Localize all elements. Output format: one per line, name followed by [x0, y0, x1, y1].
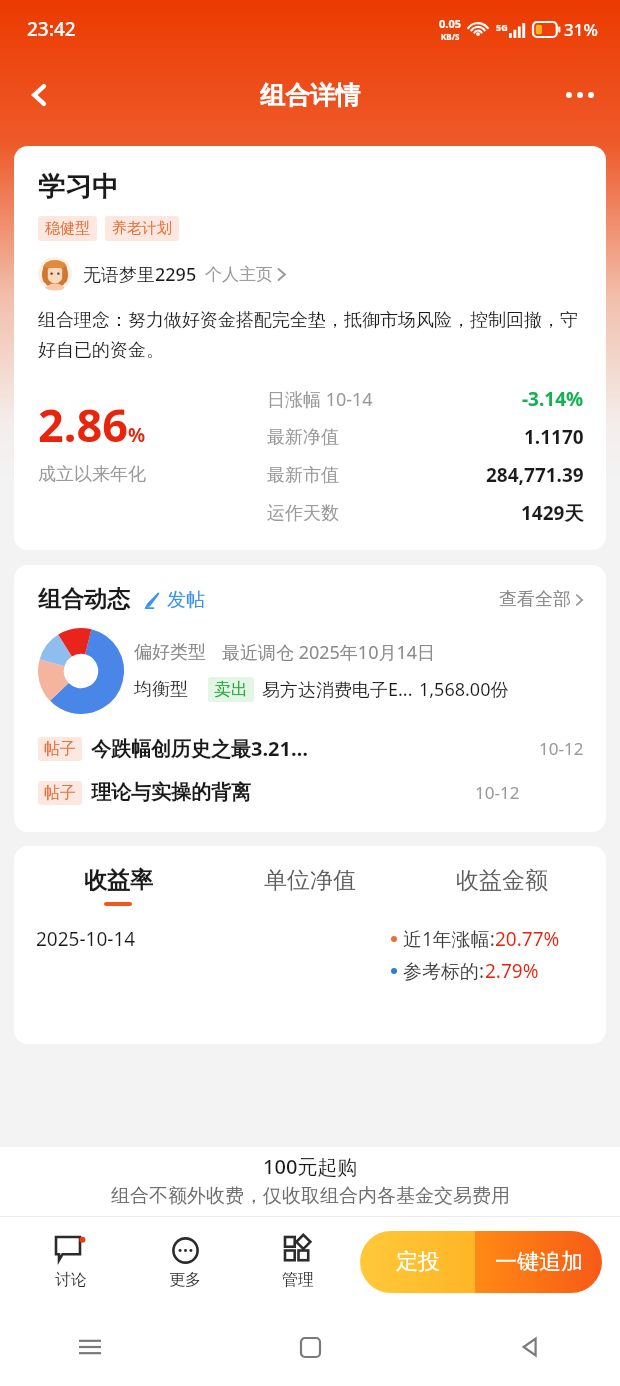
- staticText: 成立以来年化: [38, 463, 146, 486]
- staticText: 最新净值: [267, 426, 339, 449]
- staticText: 查看全部: [499, 588, 571, 611]
- staticText: 卖出: [214, 679, 248, 700]
- staticText: 10-12: [475, 781, 520, 804]
- staticText: 单位净值: [264, 866, 356, 895]
- staticText: %: [128, 422, 146, 448]
- staticText: 易方达消费电子E...: [262, 677, 413, 702]
- staticText: 2025-10-14: [36, 926, 136, 952]
- staticText: 均衡型: [134, 678, 188, 701]
- staticText: 1.1170: [524, 424, 584, 450]
- button[interactable]: Recents: [70, 1327, 110, 1367]
- staticText: 个人主页: [205, 264, 273, 285]
- staticText: 讨论: [55, 1270, 87, 1290]
- button[interactable]: 收益率: [22, 864, 214, 908]
- staticText: 组合动态: [38, 585, 130, 614]
- button[interactable]: 收益金额: [406, 864, 598, 908]
- button[interactable]: Home: [290, 1327, 330, 1367]
- staticText: 养老计划: [112, 219, 172, 238]
- staticText: 23:42: [27, 16, 76, 42]
- staticText: 帖子: [44, 739, 76, 759]
- staticText: 运作天数: [267, 502, 339, 525]
- staticText: -3.14%: [522, 386, 584, 412]
- staticText: 定投: [396, 1248, 440, 1276]
- button[interactable]: 更多: [128, 1229, 241, 1296]
- staticText: 0.05: [439, 16, 461, 31]
- button[interactable]: 帖子: [38, 730, 584, 767]
- staticText: 100元起购: [263, 1153, 358, 1180]
- button[interactable]: 稳健型: [38, 216, 97, 241]
- staticText: 管理: [282, 1270, 314, 1290]
- staticText: 1,568.00份: [419, 677, 509, 702]
- staticText: 31%: [564, 18, 598, 41]
- staticText: 20.77%: [495, 926, 560, 952]
- staticText: 10-12: [539, 737, 584, 760]
- staticText: 组合详情: [260, 80, 360, 111]
- button[interactable]: 一键追加: [475, 1231, 602, 1293]
- button[interactable]: 定投: [360, 1231, 475, 1293]
- staticText: 日涨幅 10-14: [267, 387, 373, 412]
- staticText: 收益率: [84, 866, 153, 895]
- staticText: 收益金额: [456, 866, 548, 895]
- staticText: 帖子: [44, 783, 76, 803]
- button[interactable]: 单位净值: [214, 864, 406, 908]
- staticText: 5G: [496, 21, 508, 33]
- staticText: 无语梦里2295: [83, 262, 197, 287]
- button[interactable]: Back: [510, 1327, 550, 1367]
- button[interactable]: 发帖: [144, 588, 205, 612]
- button[interactable]: 养老计划: [105, 216, 179, 241]
- button[interactable]: 帖子: [38, 775, 584, 810]
- staticText: 组合理念：努力做好资金搭配完全垫，抵御市场风险，控制回撤，守好自已的资金。: [38, 309, 584, 362]
- staticText: 偏好类型: [134, 641, 206, 664]
- staticText: 更多: [169, 1270, 201, 1290]
- button[interactable]: 讨论: [14, 1229, 128, 1296]
- staticText: 今跌幅创历史之最3.21%....: [91, 735, 315, 762]
- button[interactable]: 偏好类型: [38, 628, 509, 714]
- staticText: 学习中: [38, 170, 119, 204]
- staticText: 最新市值: [267, 464, 339, 487]
- staticText: 284,771.39: [486, 462, 584, 488]
- button[interactable]: Back: [12, 67, 68, 123]
- staticText: 稳健型: [45, 219, 90, 238]
- staticText: 1429天: [521, 500, 584, 526]
- staticText: 最近调仓 2025年10月14日: [222, 640, 436, 665]
- staticText: 2.86: [38, 394, 128, 455]
- staticText: 参考标的:: [403, 958, 485, 984]
- staticText: 发帖: [167, 588, 205, 612]
- staticText: KB/S: [441, 31, 460, 42]
- staticText: 理论与实操的背离: [91, 780, 251, 805]
- staticText: 组合不额外收费，仅收取组合内各基金交易费用: [111, 1184, 510, 1208]
- staticText: 近1年涨幅:: [403, 926, 495, 952]
- staticText: 一键追加: [495, 1248, 583, 1276]
- button[interactable]: More options: [552, 67, 608, 123]
- button[interactable]: 无语梦里2295: [38, 257, 287, 291]
- staticText: 2.79%: [485, 958, 539, 984]
- button[interactable]: 管理: [241, 1229, 354, 1296]
- button[interactable]: 查看全部: [499, 588, 584, 611]
